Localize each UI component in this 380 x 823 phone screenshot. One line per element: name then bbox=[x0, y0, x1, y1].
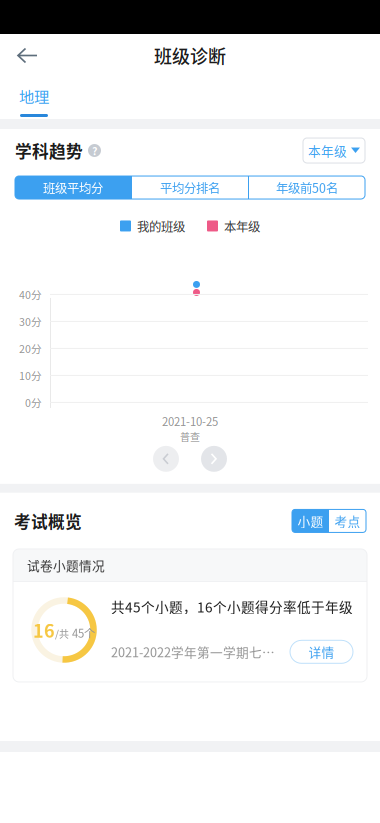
staticText: 考试概览 bbox=[14, 509, 82, 533]
button[interactable]: 考点 bbox=[329, 509, 366, 532]
button[interactable]: 详情 bbox=[290, 640, 353, 663]
staticText: 班级平均分 bbox=[43, 178, 103, 196]
button[interactable]: 本年级 bbox=[303, 138, 365, 163]
staticText: 0分 bbox=[25, 395, 42, 410]
staticText: 40分 bbox=[19, 287, 42, 302]
button[interactable]: Previous bbox=[153, 446, 179, 472]
staticText: 2021-2022学年第一学期七… bbox=[111, 643, 275, 661]
button[interactable]: 年级前50名 bbox=[249, 176, 365, 199]
staticText: 45个 bbox=[69, 625, 95, 641]
button[interactable]: 小题 bbox=[292, 509, 329, 532]
staticText: 平均分排名 bbox=[160, 178, 220, 196]
staticText: 我的班级 bbox=[137, 217, 185, 235]
staticText: 考点 bbox=[334, 512, 360, 530]
staticText: 20分 bbox=[19, 341, 42, 356]
staticText: 2021-10-25 bbox=[162, 413, 218, 429]
staticText: 地理 bbox=[19, 85, 49, 107]
staticText: 学科趋势 bbox=[15, 138, 83, 162]
staticText: 10分 bbox=[19, 368, 42, 383]
staticText: 班级诊断 bbox=[154, 42, 226, 69]
staticText: 小题 bbox=[297, 512, 323, 530]
staticText: 本年级 bbox=[224, 217, 260, 235]
staticText: 试卷小题情况 bbox=[27, 556, 105, 574]
staticText: ? bbox=[92, 143, 97, 158]
button[interactable]: Back bbox=[0, 34, 49, 76]
staticText: 详情 bbox=[308, 643, 334, 661]
button[interactable]: 地理 bbox=[0, 77, 68, 119]
staticText: 共45个小题，16个小题得分率低于年级 bbox=[111, 597, 353, 616]
button[interactable]: 平均分排名 bbox=[132, 176, 248, 199]
staticText: /共 bbox=[55, 626, 69, 641]
staticText: 普查 bbox=[180, 429, 200, 444]
staticText: 30分 bbox=[19, 314, 42, 329]
staticText: 本年级 bbox=[308, 141, 347, 160]
button[interactable]: Next bbox=[201, 446, 227, 472]
button[interactable]: 班级平均分 bbox=[15, 176, 131, 199]
staticText: 年级前50名 bbox=[276, 178, 338, 196]
staticText: 16 bbox=[33, 617, 55, 643]
